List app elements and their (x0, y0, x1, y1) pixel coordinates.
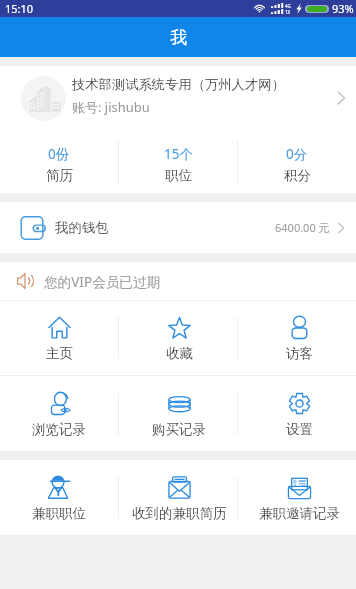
staticText: 职位 (165, 167, 192, 184)
button[interactable]: 您的VIP会员已过期 (0, 262, 356, 300)
staticText: 1X (285, 9, 291, 15)
staticText: 收到的兼职简历 (132, 505, 227, 522)
staticText: 6400.00 元 (275, 220, 330, 235)
button[interactable]: 收到的兼职简历 (119, 474, 237, 522)
button[interactable]: 15个 (119, 145, 237, 184)
staticText: 简历 (46, 167, 73, 184)
staticText: 15个 (164, 145, 193, 163)
button[interactable]: 主页 (0, 314, 118, 362)
button[interactable]: 我的钱包 (0, 202, 356, 253)
staticText: 0分 (286, 145, 308, 163)
staticText: 4G (285, 3, 291, 9)
button[interactable]: 兼职邀请记录 (238, 474, 356, 522)
staticText: 我的钱包 (55, 219, 109, 236)
button[interactable]: 设置 (238, 390, 356, 438)
staticText: 访客 (286, 345, 313, 362)
staticText: 您的VIP会员已过期 (44, 272, 161, 291)
button[interactable]: 收藏 (119, 314, 237, 362)
staticText: 积分 (284, 167, 311, 184)
staticText: 收藏 (166, 345, 193, 362)
button[interactable]: 兼职职位 (0, 473, 118, 522)
staticText: 0份 (48, 145, 70, 163)
staticText: 我 (170, 27, 187, 48)
staticText: 主页 (46, 345, 73, 362)
button[interactable]: 购买记录 (119, 390, 237, 438)
staticText: 账号: jishubu (72, 98, 150, 116)
staticText: 购买记录 (152, 421, 206, 438)
button[interactable]: 0份 (0, 145, 118, 184)
button[interactable]: 浏览记录 (0, 390, 118, 438)
staticText: 设置 (286, 421, 313, 438)
staticText: 技术部测试系统专用（万州人才网） (72, 76, 285, 93)
staticText: 93% (332, 1, 354, 16)
staticText: 15:10 (5, 1, 34, 16)
button[interactable]: 0分 (238, 145, 356, 184)
staticText: 浏览记录 (32, 421, 86, 438)
button[interactable]: 技术部测试系统专用（万州人才网） (0, 66, 356, 130)
staticText: 兼职邀请记录 (259, 505, 340, 522)
staticText: 兼职职位 (32, 505, 86, 522)
button[interactable]: 访客 (238, 314, 356, 362)
